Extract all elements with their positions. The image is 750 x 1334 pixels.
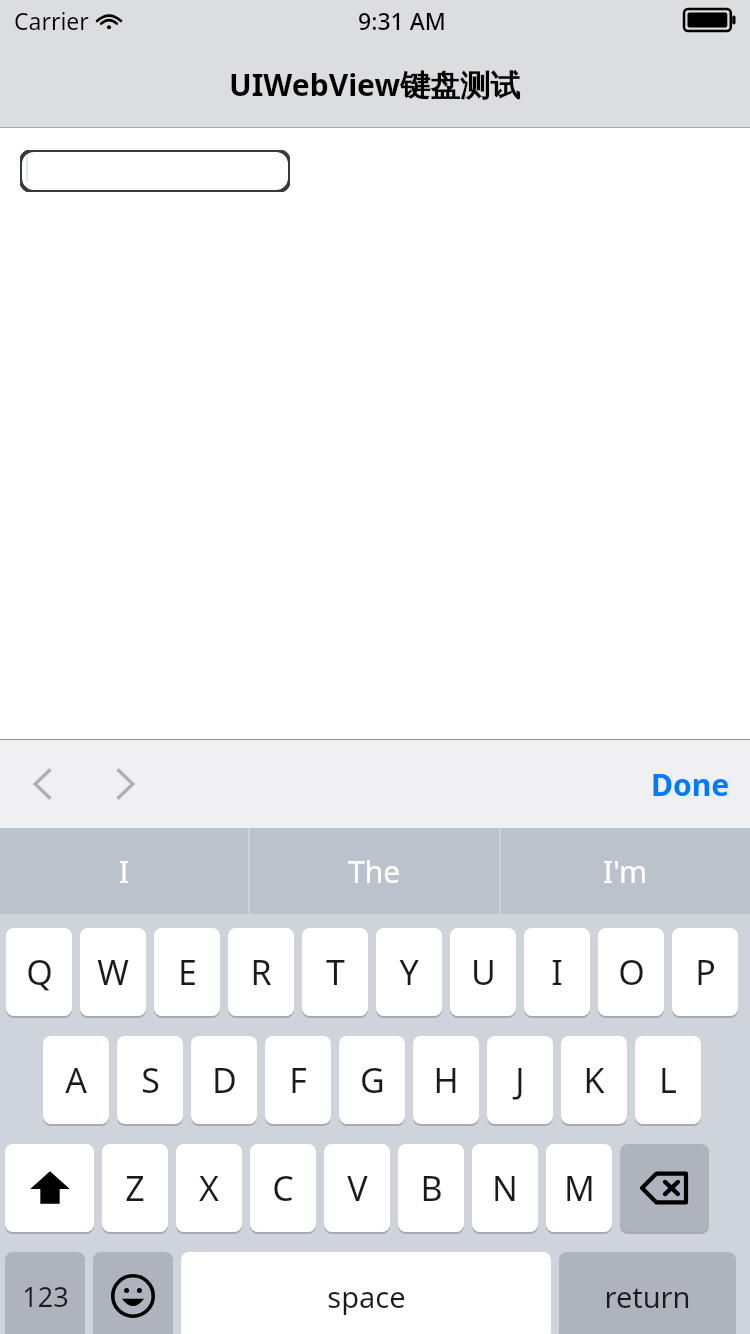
button[interactable]: N: [472, 1144, 538, 1232]
button[interactable]: L: [635, 1036, 701, 1124]
staticText: N: [492, 1165, 518, 1211]
button[interactable]: Done: [631, 740, 750, 828]
button[interactable]: Z: [102, 1144, 168, 1232]
staticText: Q: [26, 949, 53, 995]
button[interactable]: P: [672, 928, 738, 1016]
staticText: D: [212, 1057, 237, 1103]
button[interactable]: C: [250, 1144, 316, 1232]
button[interactable]: H: [413, 1036, 479, 1124]
button[interactable]: Delete: [620, 1144, 709, 1232]
button[interactable]: Q: [6, 928, 72, 1016]
staticText: I: [551, 949, 563, 995]
staticText: F: [289, 1057, 307, 1103]
staticText: K: [583, 1057, 605, 1103]
button[interactable]: space: [181, 1252, 551, 1334]
staticText: Z: [125, 1165, 145, 1211]
button[interactable]: I: [0, 828, 248, 914]
button[interactable]: [20, 150, 290, 192]
staticText: return: [604, 1277, 691, 1316]
staticText: T: [326, 949, 345, 995]
staticText: G: [360, 1057, 385, 1103]
staticText: Carrier: [14, 5, 89, 36]
button[interactable]: Emoji keyboard: [93, 1252, 173, 1334]
staticText: O: [618, 949, 645, 995]
staticText: U: [471, 949, 496, 995]
staticText: L: [659, 1057, 677, 1103]
staticText: space: [327, 1277, 406, 1316]
staticText: P: [695, 949, 716, 995]
staticText: R: [250, 949, 272, 995]
staticText: 123: [22, 1278, 69, 1315]
button[interactable]: U: [450, 928, 516, 1016]
staticText: W: [97, 949, 129, 995]
staticText: B: [420, 1165, 443, 1211]
button[interactable]: E: [154, 928, 220, 1016]
button[interactable]: Next field: [102, 760, 150, 808]
staticText: 9:31 AM: [358, 5, 446, 36]
staticText: M: [564, 1165, 595, 1211]
button[interactable]: J: [487, 1036, 553, 1124]
button[interactable]: A: [43, 1036, 109, 1124]
staticText: X: [199, 1165, 219, 1211]
staticText: Done: [651, 764, 730, 805]
button[interactable]: B: [398, 1144, 464, 1232]
staticText: The: [348, 851, 401, 892]
button[interactable]: S: [117, 1036, 183, 1124]
button[interactable]: Previous field: [18, 760, 66, 808]
button[interactable]: The: [250, 828, 499, 914]
staticText: J: [515, 1057, 525, 1103]
button[interactable]: Shift: [5, 1144, 94, 1232]
button[interactable]: W: [80, 928, 146, 1016]
staticText: Y: [399, 949, 419, 995]
button[interactable]: M: [546, 1144, 612, 1232]
button[interactable]: I'm: [501, 828, 750, 914]
staticText: I: [119, 851, 130, 892]
staticText: I'm: [603, 851, 648, 892]
button[interactable]: K: [561, 1036, 627, 1124]
button[interactable]: return: [559, 1252, 736, 1334]
staticText: H: [433, 1057, 459, 1103]
button[interactable]: O: [598, 928, 664, 1016]
staticText: V: [347, 1165, 368, 1211]
staticText: S: [141, 1057, 160, 1103]
button[interactable]: D: [191, 1036, 257, 1124]
button[interactable]: G: [339, 1036, 405, 1124]
button[interactable]: V: [324, 1144, 390, 1232]
button[interactable]: X: [176, 1144, 242, 1232]
button[interactable]: I: [524, 928, 590, 1016]
staticText: E: [178, 949, 197, 995]
button[interactable]: Y: [376, 928, 442, 1016]
button[interactable]: T: [302, 928, 368, 1016]
staticText: C: [272, 1165, 294, 1211]
button[interactable]: 123: [5, 1252, 85, 1334]
staticText: A: [65, 1057, 87, 1103]
staticText: UIWebView键盘测试: [229, 64, 521, 105]
button[interactable]: R: [228, 928, 294, 1016]
button[interactable]: F: [265, 1036, 331, 1124]
